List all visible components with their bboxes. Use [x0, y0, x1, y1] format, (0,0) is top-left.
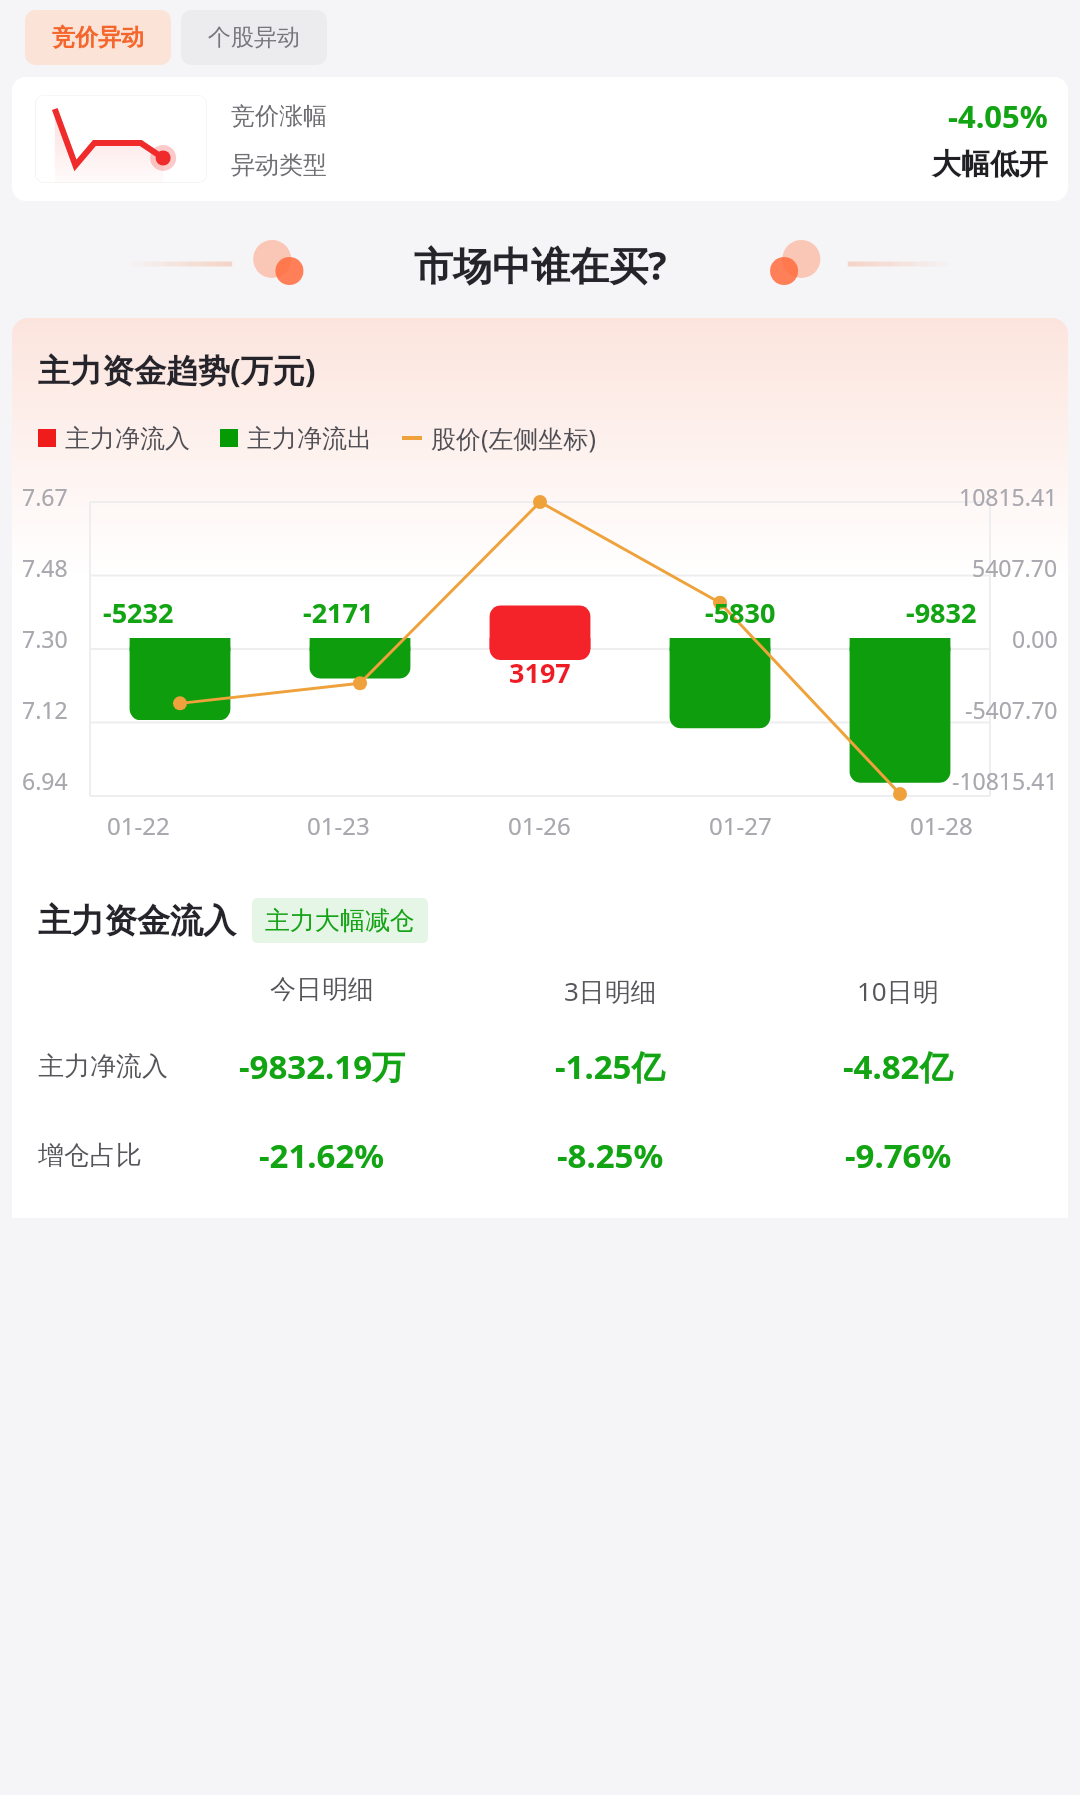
staticText: 主力净流入: [38, 1050, 168, 1083]
staticText: -8.25%: [557, 1133, 664, 1178]
staticText: -9832: [906, 594, 977, 631]
staticText: 市场中谁在买?: [414, 238, 667, 291]
staticText: 01-22: [107, 809, 170, 842]
staticText: -1.25亿: [555, 1044, 665, 1089]
button[interactable]: 竞价异动: [25, 10, 171, 65]
staticText: 主力大幅减仓: [265, 905, 415, 936]
staticText: 7.30: [22, 623, 68, 654]
staticText: 个股异动: [208, 23, 300, 52]
staticText: 竞价涨幅: [231, 101, 327, 131]
staticText: 01-27: [709, 809, 772, 842]
staticText: 3197: [509, 654, 571, 691]
staticText: 竞价异动: [52, 23, 144, 52]
staticText: -4.82亿: [843, 1044, 953, 1089]
staticText: 5407.70: [972, 552, 1058, 583]
staticText: -21.62%: [259, 1133, 385, 1178]
staticText: 主力资金趋势(万元): [38, 348, 316, 392]
staticText: -4.05%: [948, 95, 1048, 137]
button[interactable]: 竞价涨幅: [12, 77, 1068, 201]
staticText: -9.76%: [845, 1133, 952, 1178]
staticText: -2171: [303, 594, 374, 631]
staticText: 01-26: [508, 809, 571, 842]
staticText: 7.67: [22, 481, 68, 512]
staticText: 7.48: [22, 552, 68, 583]
staticText: 大幅低开: [932, 146, 1048, 183]
staticText: -5830: [705, 594, 776, 631]
staticText: -10815.41: [952, 765, 1058, 796]
staticText: 6.94: [22, 765, 68, 796]
staticText: 0.00: [1012, 623, 1058, 654]
staticText: 股价(左侧坐标): [431, 421, 597, 455]
staticText: 01-28: [910, 809, 973, 842]
staticText: 异动类型: [231, 150, 327, 180]
staticText: 01-23: [307, 809, 370, 842]
button[interactable]: 个股异动: [181, 10, 327, 65]
staticText: 主力净流入: [65, 423, 190, 454]
staticText: -5232: [103, 594, 174, 631]
staticText: 主力资金流入: [38, 900, 236, 942]
staticText: 3日明细: [564, 973, 657, 1009]
staticText: -9832.19万: [239, 1044, 406, 1089]
staticText: 10日明: [857, 973, 939, 1009]
staticText: 今日明细: [270, 973, 374, 1006]
staticText: 增仓占比: [38, 1139, 142, 1172]
staticText: 主力净流出: [247, 423, 372, 454]
staticText: 7.12: [22, 694, 68, 725]
staticText: -5407.70: [965, 694, 1058, 725]
staticText: 10815.41: [959, 481, 1058, 512]
